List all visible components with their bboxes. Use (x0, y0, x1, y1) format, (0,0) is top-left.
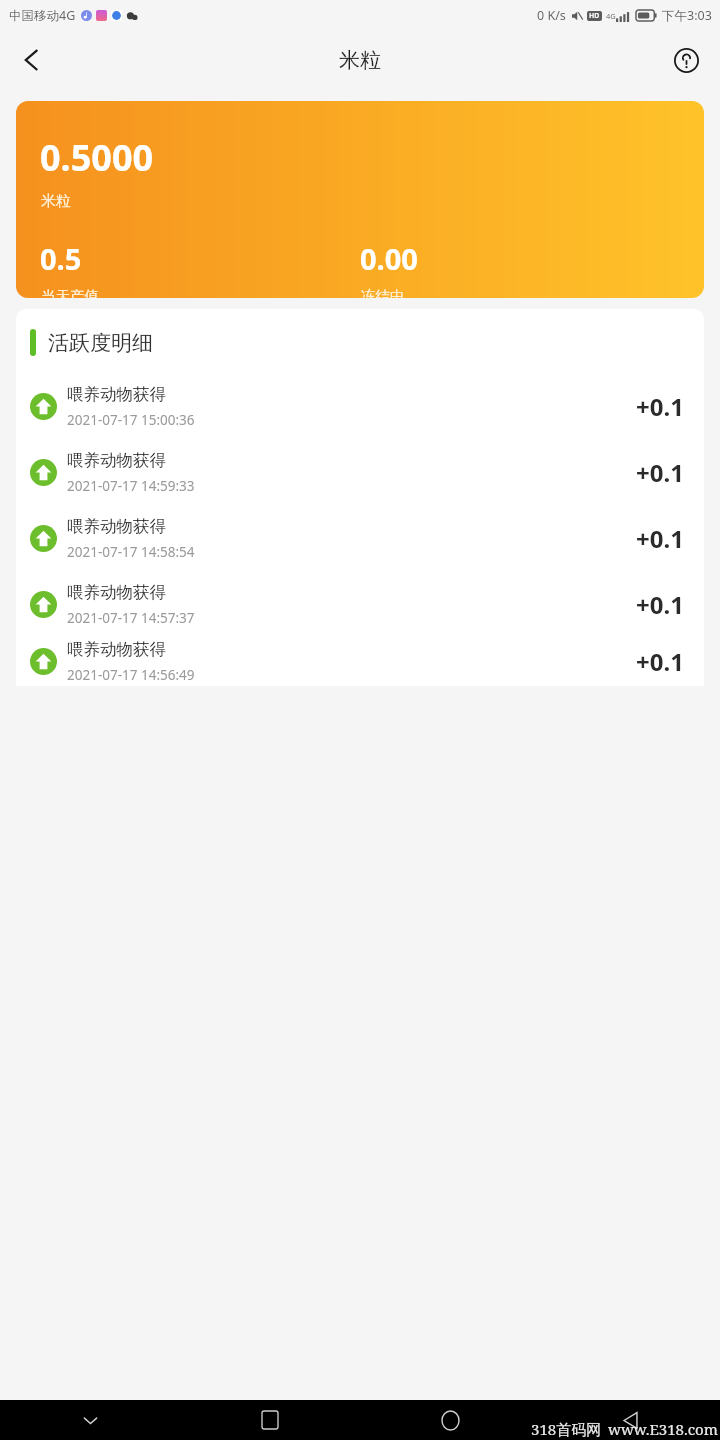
staticText: +0.1 (636, 390, 684, 423)
button[interactable]: Recent apps (180, 1400, 360, 1440)
button[interactable]: Back (8, 36, 56, 84)
staticText: 喂养动物获得 (67, 450, 166, 471)
staticText: 当天产值 (41, 287, 99, 298)
staticText: 米粒 (41, 192, 71, 211)
button[interactable]: 喂养动物获得 (16, 571, 704, 637)
staticText: 2021-07-17 15:00:36 (67, 411, 195, 429)
button[interactable]: Back (540, 1400, 720, 1440)
staticText: 中国移动4G (9, 7, 76, 24)
staticText: 喂养动物获得 (67, 516, 166, 537)
staticText: 喂养动物获得 (67, 582, 166, 603)
staticText: 318首码网 (531, 1419, 602, 1439)
staticText: +0.1 (636, 522, 684, 555)
staticText: 0.5 (40, 239, 82, 278)
staticText: 喂养动物获得 (67, 384, 166, 405)
button[interactable]: 喂养动物获得 (16, 637, 704, 686)
button[interactable]: 0.5000 (16, 101, 704, 298)
staticText: 冻结中 (361, 287, 405, 298)
staticText: 喂养动物获得 (67, 639, 166, 660)
staticText: 2021-07-17 14:57:37 (67, 609, 195, 627)
staticText: 米粒 (339, 47, 381, 73)
button[interactable]: 喂养动物获得 (16, 439, 704, 505)
button[interactable]: Help (662, 36, 710, 84)
staticText: 活跃度明细 (48, 330, 153, 356)
button[interactable]: 喂养动物获得 (16, 505, 704, 571)
staticText: 下午3:03 (662, 7, 712, 24)
staticText: 2021-07-17 14:59:33 (67, 477, 195, 495)
staticText: HD (589, 11, 600, 21)
staticText: 0 K/s (537, 7, 566, 24)
staticText: 2021-07-17 14:56:49 (67, 666, 195, 684)
staticText: www.E318.com (608, 1419, 718, 1439)
button[interactable]: Home (360, 1400, 540, 1440)
staticText: +0.1 (636, 588, 684, 621)
staticText: 0.00 (360, 239, 418, 278)
staticText: 2021-07-17 14:58:54 (67, 543, 195, 561)
button[interactable]: Hide keyboard (0, 1400, 180, 1440)
button[interactable]: 喂养动物获得 (16, 373, 704, 439)
staticText: +0.1 (636, 645, 684, 678)
staticText: 0.5000 (40, 133, 154, 182)
staticText: +0.1 (636, 456, 684, 489)
staticText: 4G (606, 11, 616, 21)
